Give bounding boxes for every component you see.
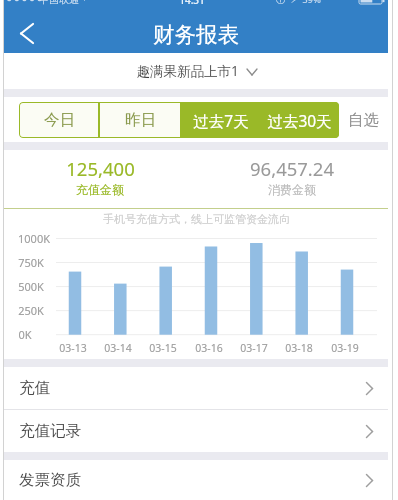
staticText: 昨日	[125, 110, 156, 130]
staticText: 发票资质	[19, 470, 81, 490]
staticText: ▾	[82, 0, 87, 3]
button[interactable]: 自选	[339, 102, 388, 138]
button[interactable]: 充值记录	[4, 410, 388, 452]
staticText: 充值记录	[19, 421, 81, 441]
staticText: 充值	[19, 378, 50, 398]
staticText: 趣满果新品上市1	[136, 62, 239, 80]
staticText: 财务报表	[153, 21, 239, 48]
staticText: 中国联通	[39, 0, 79, 6]
staticText: 03-18	[285, 341, 313, 355]
button[interactable]: Back	[4, 14, 48, 53]
staticText: 03-17	[240, 341, 268, 355]
staticText: 过去30天	[267, 110, 332, 131]
staticText: 125,400	[66, 156, 135, 181]
button[interactable]: 发票资质	[4, 460, 388, 500]
staticText: 1000K	[18, 231, 50, 246]
staticText: 充值金额	[76, 182, 124, 197]
staticText: 03-16	[195, 341, 223, 355]
staticText: 消费金额	[268, 182, 316, 197]
button[interactable]: 昨日	[99, 102, 181, 138]
button[interactable]: 充值	[4, 367, 388, 409]
staticText: 500K	[18, 279, 44, 294]
staticText: 03-15	[149, 341, 177, 355]
staticText: 750K	[18, 255, 44, 270]
staticText: 自选	[348, 110, 379, 130]
button[interactable]: 过去30天	[260, 102, 339, 138]
staticText: 14:31	[179, 0, 205, 7]
staticText: 03-19	[331, 341, 359, 355]
staticText: 手机号充值方式，线上可监管资金流向	[103, 212, 290, 226]
staticText: 过去7天	[193, 110, 249, 131]
button[interactable]: 今日	[19, 102, 99, 138]
staticText: 0K	[18, 327, 32, 342]
staticText: 03-13	[59, 341, 87, 355]
staticText: 96,457.24	[250, 156, 334, 181]
staticText: ⓘ ⚡ 59%	[276, 0, 321, 6]
staticText: 今日	[44, 110, 75, 130]
staticText: 250K	[18, 303, 44, 318]
staticText: 03-14	[104, 341, 132, 355]
button[interactable]: 过去7天	[181, 102, 260, 138]
button[interactable]: 趣满果新品上市1	[4, 53, 388, 89]
